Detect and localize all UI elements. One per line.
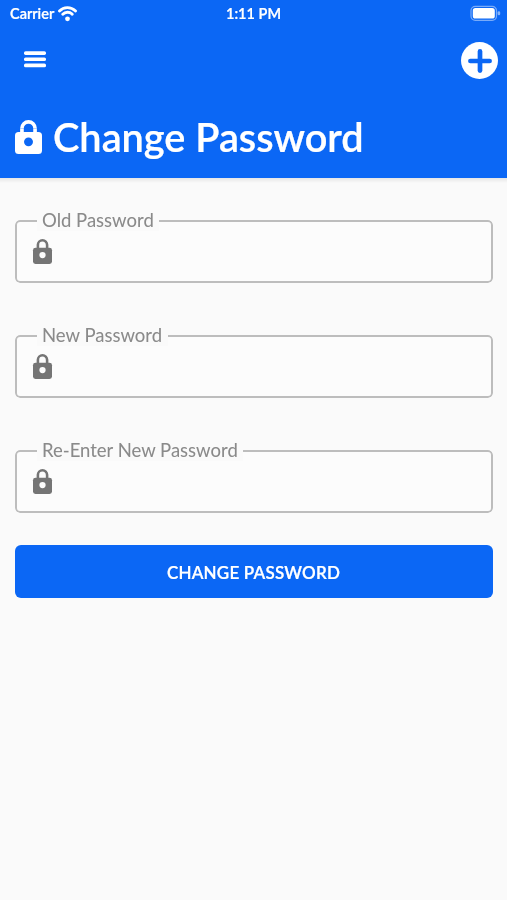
staticText: 1:11 PM bbox=[226, 5, 281, 22]
staticText: Change Password bbox=[53, 113, 364, 161]
button[interactable] bbox=[15, 335, 493, 398]
button[interactable]: CHANGE PASSWORD bbox=[15, 545, 493, 598]
button[interactable] bbox=[18, 45, 52, 73]
button[interactable] bbox=[15, 450, 493, 513]
button[interactable] bbox=[15, 220, 493, 283]
staticText: Carrier bbox=[10, 5, 55, 22]
button[interactable] bbox=[461, 42, 498, 79]
staticText: Re-Enter New Password bbox=[42, 439, 238, 461]
staticText: New Password bbox=[42, 324, 163, 346]
staticText: CHANGE PASSWORD bbox=[167, 562, 341, 582]
staticText: Old Password bbox=[42, 209, 154, 231]
